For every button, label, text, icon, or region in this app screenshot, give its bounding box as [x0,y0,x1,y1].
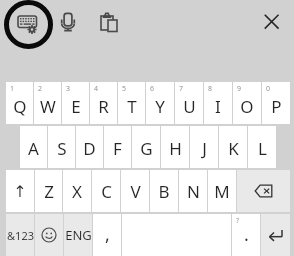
staticText: D [83,137,96,160]
button[interactable]: J [190,126,218,168]
staticText: 0 [266,84,271,94]
button[interactable]: Close keyboard [259,9,284,34]
button[interactable]: &123 [6,214,34,256]
staticText: V [130,180,141,203]
button[interactable]: 8 [204,82,232,124]
staticText: , [105,222,110,247]
staticText: H [169,137,182,160]
staticText: B [158,180,170,203]
button[interactable]: Z [35,170,62,212]
button[interactable]: F [104,126,131,168]
staticText: F [113,137,122,160]
button[interactable]: Voice input [55,10,81,36]
button[interactable]: ENG [64,214,92,256]
staticText: Z [44,180,54,203]
button[interactable]: B [150,170,178,212]
button[interactable]: Enter [261,214,290,256]
staticText: . [244,222,249,247]
staticText: P [271,95,282,118]
button[interactable]: Backspace [237,170,290,212]
staticText: R [98,95,109,118]
staticText: 4 [94,84,99,94]
staticText: 1 [10,84,15,94]
button[interactable]: N [179,170,207,212]
button[interactable]: V [121,170,149,212]
staticText: 7 [179,84,184,94]
button[interactable]: Emoji [35,214,63,256]
button[interactable]: 3 [62,82,89,124]
staticText: M [214,180,230,203]
staticText: K [228,137,239,160]
staticText: 9 [237,84,242,94]
staticText: E [71,95,81,118]
staticText: N [187,180,200,203]
button[interactable]: M [208,170,236,212]
button[interactable]: 2 [34,82,61,124]
button[interactable]: D [76,126,103,168]
staticText: O [240,95,254,118]
staticText: 5 [122,84,127,94]
staticText: ENG [65,226,92,244]
button[interactable]: 5 [118,82,145,124]
staticText: X [72,180,82,203]
staticText: 3 [66,84,71,94]
button[interactable]: ↑ [6,170,34,212]
button[interactable]: 4 [90,82,117,124]
staticText: A [28,137,39,160]
button[interactable]: A [20,126,47,168]
button[interactable]: C [92,170,120,212]
button[interactable]: 0 [262,82,290,124]
button[interactable]: 9 [233,82,261,124]
button[interactable]: , [93,214,121,256]
staticText: S [57,137,67,160]
button[interactable]: Keyboard settings [4,1,52,49]
button[interactable]: L [248,126,276,168]
staticText: I [215,95,221,118]
staticText: 6 [150,84,155,94]
staticText: W [40,95,56,118]
button[interactable]: G [132,126,160,168]
button[interactable]: X [63,170,91,212]
staticText: L [258,137,267,160]
staticText: &123 [7,228,34,243]
button[interactable]: 1 [6,82,33,124]
button[interactable]: K [219,126,247,168]
staticText: J [202,137,207,160]
button[interactable]: Clipboard [96,12,122,38]
staticText: ↑ [13,182,27,201]
staticText: C [101,180,112,203]
staticText: ? [236,216,240,226]
button[interactable]: 6 [146,82,174,124]
staticText: Q [13,95,27,118]
button[interactable]: H [161,126,189,168]
staticText: U [183,95,196,118]
staticText: 8 [208,84,213,94]
staticText: 2 [38,84,43,94]
button[interactable]: S [48,126,75,168]
staticText: G [140,137,153,160]
button[interactable]: ? [232,214,260,256]
staticText: T [127,95,137,118]
button[interactable]: 7 [175,82,203,124]
staticText: Y [155,95,165,118]
